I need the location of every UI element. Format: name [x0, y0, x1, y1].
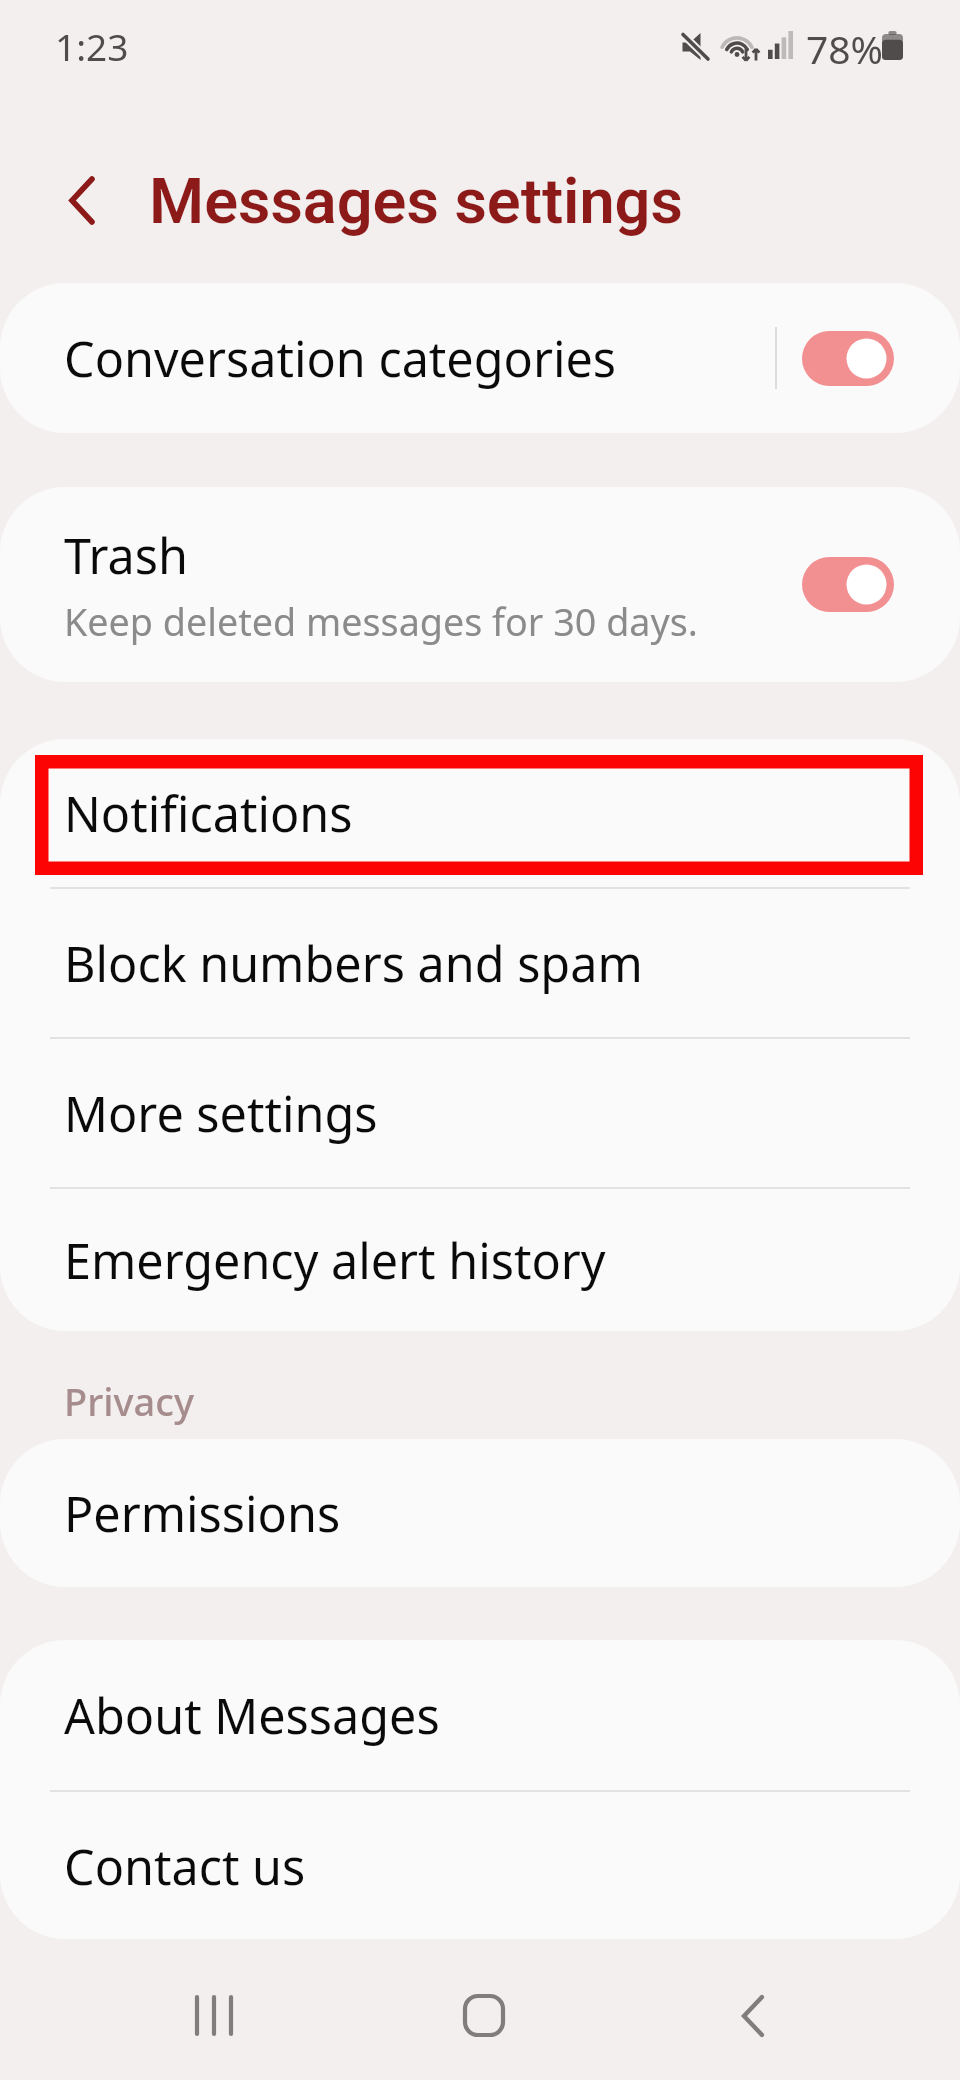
staticText: Messages settings: [149, 165, 683, 239]
button[interactable]: Notifications: [0, 739, 960, 887]
staticText: Conversation categories: [64, 325, 617, 391]
button[interactable]: Home: [424, 1955, 544, 2075]
button[interactable]: Conversation categories switch, on: [802, 331, 894, 386]
button[interactable]: Permissions: [0, 1439, 960, 1587]
button[interactable]: Trash: [0, 487, 960, 682]
button[interactable]: Block numbers and spam: [0, 889, 960, 1037]
button[interactable]: Back: [693, 1956, 813, 2076]
staticText: Contact us: [64, 1833, 306, 1899]
button[interactable]: Conversation categories: [0, 283, 960, 433]
button[interactable]: Recent apps: [154, 1955, 274, 2075]
button[interactable]: Navigate up: [40, 158, 124, 242]
staticText: 78%: [806, 22, 884, 75]
staticText: Permissions: [64, 1480, 341, 1546]
button[interactable]: Trash switch, on: [802, 557, 894, 612]
button[interactable]: Contact us: [0, 1792, 960, 1939]
staticText: More settings: [64, 1080, 378, 1146]
staticText: Emergency alert history: [64, 1227, 606, 1293]
staticText: Keep deleted messages for 30 days.: [64, 596, 698, 647]
staticText: Privacy: [64, 1375, 194, 1427]
staticText: Block numbers and spam: [64, 930, 643, 996]
button[interactable]: About Messages: [0, 1640, 960, 1790]
staticText: 1:23: [55, 21, 129, 71]
button[interactable]: More settings: [0, 1039, 960, 1187]
button[interactable]: Emergency alert history: [0, 1189, 960, 1331]
staticText: Notifications: [64, 780, 353, 846]
staticText: Trash: [64, 522, 189, 588]
staticText: About Messages: [64, 1682, 440, 1748]
